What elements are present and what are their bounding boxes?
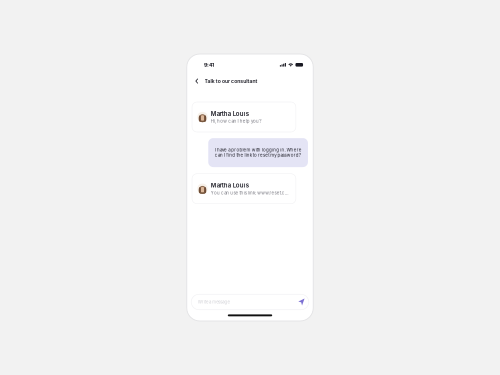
staticText: Write a message: [198, 299, 229, 305]
staticText: I have a problem with logging in. Where …: [215, 147, 301, 158]
staticText: You can use this link: www.reset.com: [211, 190, 291, 196]
staticText: 9:41: [204, 62, 214, 68]
staticText: Martha Louis: [211, 110, 249, 117]
button[interactable]: Send message: [295, 295, 309, 308]
staticText: Hi, how can I help you?: [211, 119, 261, 124]
staticText: Talk to our consultant: [204, 78, 257, 84]
staticText: Martha Louis: [211, 182, 249, 189]
button[interactable]: Back: [187, 75, 205, 87]
